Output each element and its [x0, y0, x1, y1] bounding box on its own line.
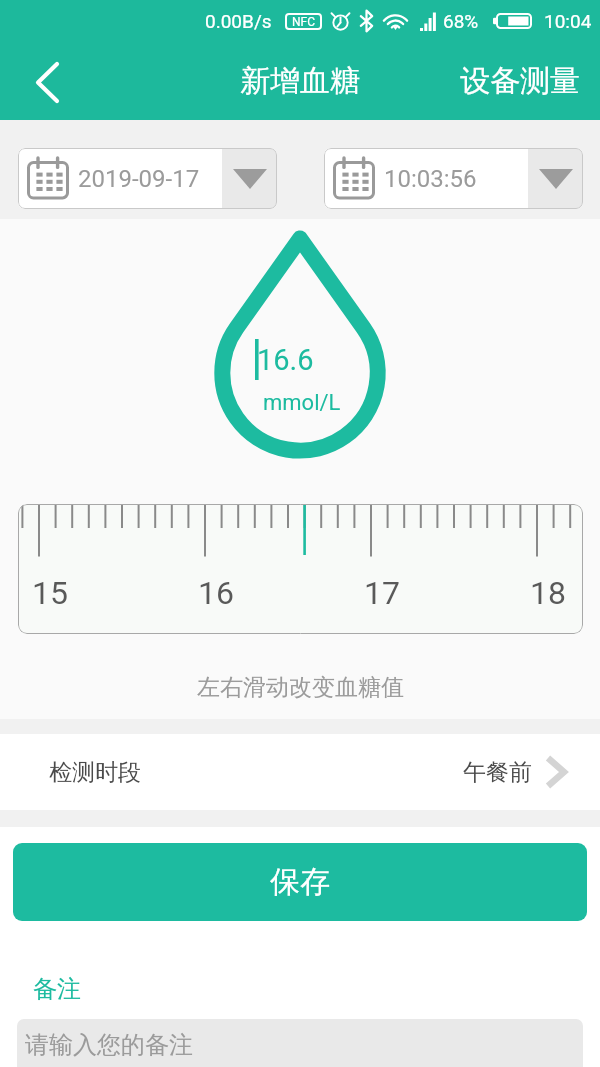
staticText: 17 — [364, 574, 400, 612]
staticText: 请输入您的备注 — [25, 1030, 193, 1060]
staticText: 68% — [443, 10, 479, 32]
staticText: 设备测量 — [460, 62, 580, 100]
button[interactable]: 2019-09-17 — [18, 148, 277, 209]
button[interactable]: 15 — [18, 504, 583, 634]
staticText: 0.00B/s — [205, 10, 272, 32]
button[interactable]: 请输入您的备注 — [17, 1019, 583, 1067]
button[interactable]: 保存 — [13, 843, 587, 921]
staticText: 10:03:56 — [384, 165, 477, 193]
staticText: 检测时段 — [49, 758, 141, 787]
staticText: 15 — [32, 574, 68, 612]
button[interactable]: Back — [0, 41, 94, 120]
staticText: 备注 — [33, 974, 81, 1004]
button[interactable]: 设备测量 — [442, 41, 600, 120]
staticText: 16 — [198, 574, 234, 612]
staticText: 2019-09-17 — [78, 165, 200, 193]
staticText: 午餐前 — [463, 758, 532, 787]
staticText: NFC — [292, 15, 316, 29]
staticText: mmol/L — [263, 390, 341, 416]
button[interactable]: 10:03:56 — [324, 148, 583, 209]
staticText: 保存 — [270, 863, 330, 901]
staticText: 10:04 — [544, 10, 592, 32]
staticText: 18 — [530, 574, 566, 612]
button[interactable]: 检测时段 — [0, 734, 600, 810]
staticText: 左右滑动改变血糖值 — [197, 673, 404, 702]
staticText: 新增血糖 — [240, 62, 360, 100]
staticText: 16.6 — [257, 343, 314, 377]
